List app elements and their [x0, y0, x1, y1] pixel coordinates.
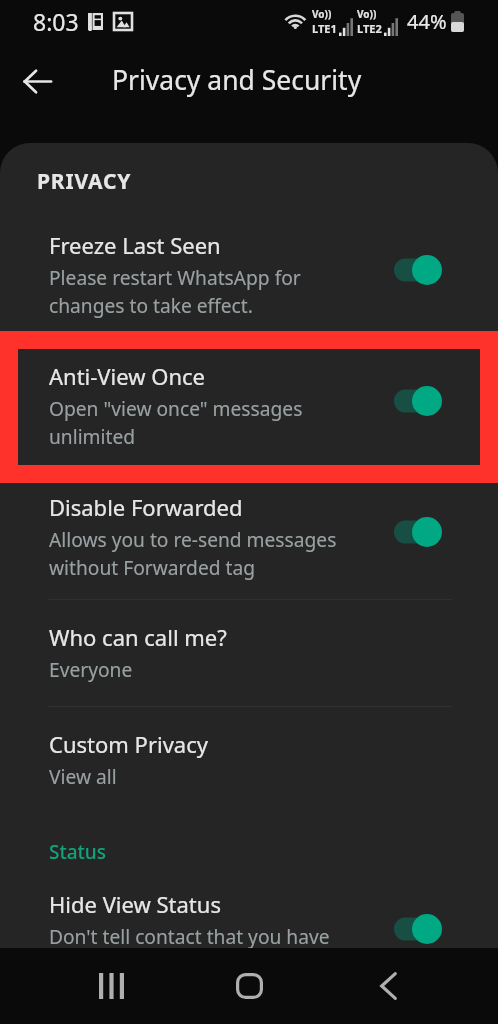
button[interactable]: Freeze Last Seen — [0, 218, 498, 322]
staticText: PRIVACY — [37, 167, 132, 196]
button[interactable]: Back — [360, 958, 416, 1014]
button[interactable]: Back — [13, 57, 61, 105]
staticText: LTE2 — [357, 21, 382, 36]
staticText: Who can call me? — [49, 622, 227, 652]
staticText: Don't tell contact that you have — [49, 923, 330, 949]
staticText: Vo)) — [357, 7, 377, 21]
staticText: 44% — [407, 8, 447, 35]
staticText: Everyone — [49, 656, 133, 682]
staticText: Disable Forwarded — [49, 492, 243, 522]
button[interactable]: Toggle Anti-View Once — [391, 384, 447, 418]
button[interactable]: Who can call me? — [0, 610, 498, 686]
staticText: Open "view once" messages unlimited — [49, 395, 303, 450]
button[interactable]: Toggle Hide View Status — [391, 912, 447, 946]
button[interactable]: Toggle Freeze Last Seen — [391, 253, 447, 287]
staticText: 8:03 — [33, 6, 79, 37]
button[interactable]: Custom Privacy — [0, 717, 498, 793]
staticText: Hide View Status — [49, 889, 221, 919]
staticText: Freeze Last Seen — [49, 230, 221, 260]
staticText: LTE1 — [312, 21, 337, 36]
staticText: Allows you to re-send messages without F… — [49, 526, 337, 581]
button[interactable]: Anti-View Once — [0, 349, 498, 453]
staticText: Status — [49, 839, 107, 865]
button[interactable]: Hide View Status — [0, 877, 498, 949]
staticText: Custom Privacy — [49, 729, 208, 759]
staticText: Anti-View Once — [49, 361, 205, 391]
staticText: View all — [49, 763, 117, 789]
button[interactable]: Disable Forwarded — [0, 480, 498, 584]
button[interactable]: Recent apps — [83, 958, 139, 1014]
staticText: Vo)) — [312, 7, 332, 21]
staticText: Please restart WhatsApp for changes to t… — [49, 264, 301, 319]
button[interactable]: Toggle Disable Forwarded — [391, 515, 447, 549]
staticText: Privacy and Security — [112, 62, 362, 98]
button[interactable]: Home — [221, 958, 277, 1014]
